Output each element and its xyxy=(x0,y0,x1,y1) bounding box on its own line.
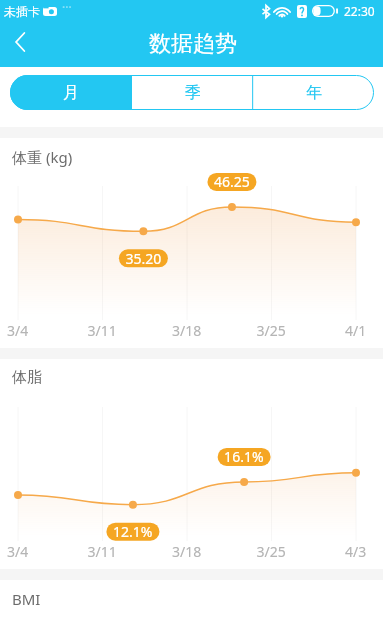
staticText: ··· xyxy=(62,0,72,15)
button[interactable]: 季 xyxy=(132,75,253,110)
staticText: BMI xyxy=(12,589,41,609)
staticText: 数据趋势 xyxy=(149,30,237,58)
staticText: 季 xyxy=(185,83,201,103)
staticText: 体脂 xyxy=(12,368,42,387)
staticText: 22:30 xyxy=(344,3,375,19)
button[interactable]: 年 xyxy=(253,75,374,110)
button[interactable]: Back xyxy=(0,25,40,65)
staticText: 月 xyxy=(63,83,79,103)
staticText: 年 xyxy=(306,83,322,103)
button[interactable]: 月 xyxy=(10,75,132,110)
staticText: 体重 (kg) xyxy=(12,147,73,167)
staticText: 未插卡 xyxy=(4,4,40,19)
